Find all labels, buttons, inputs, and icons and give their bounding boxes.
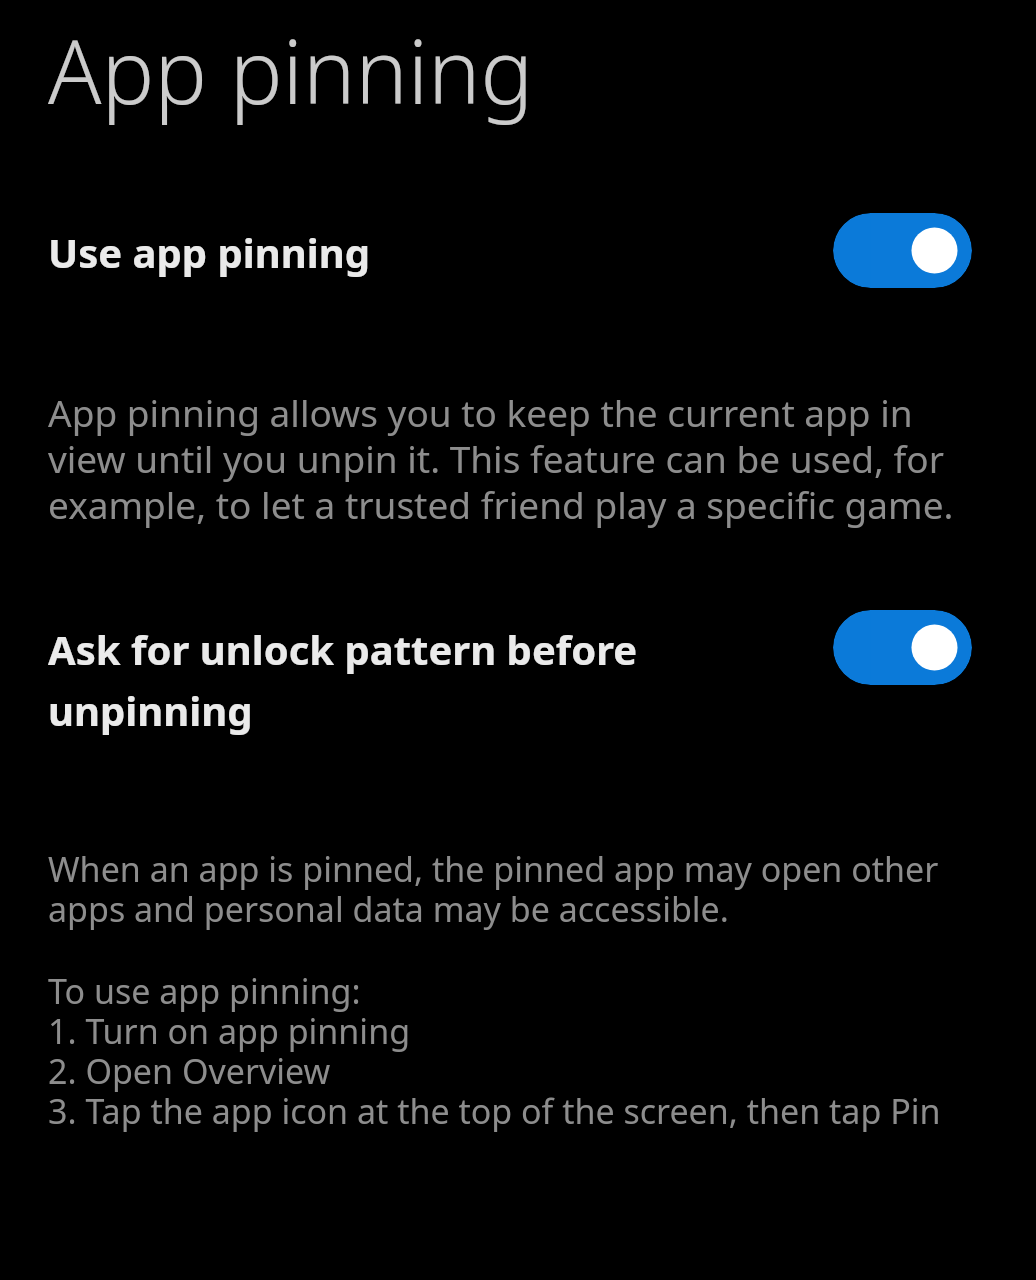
- staticText: App pinning: [48, 22, 534, 126]
- staticText: When an app is pinned, the pinned app ma…: [48, 851, 976, 931]
- button[interactable]: Ask for unlock pattern before unpinning: [0, 617, 1036, 739]
- staticText: Use app pinning: [48, 220, 768, 281]
- staticText: Ask for unlock pattern before unpinning: [48, 617, 748, 739]
- staticText: To use app pinning: 1. Turn on app pinni…: [48, 973, 996, 1133]
- button[interactable]: Use app pinning: [833, 213, 972, 288]
- button[interactable]: Use app pinning: [0, 220, 1036, 295]
- staticText: App pinning allows you to keep the curre…: [48, 391, 966, 529]
- button[interactable]: Ask for unlock pattern before unpinning: [833, 610, 972, 685]
